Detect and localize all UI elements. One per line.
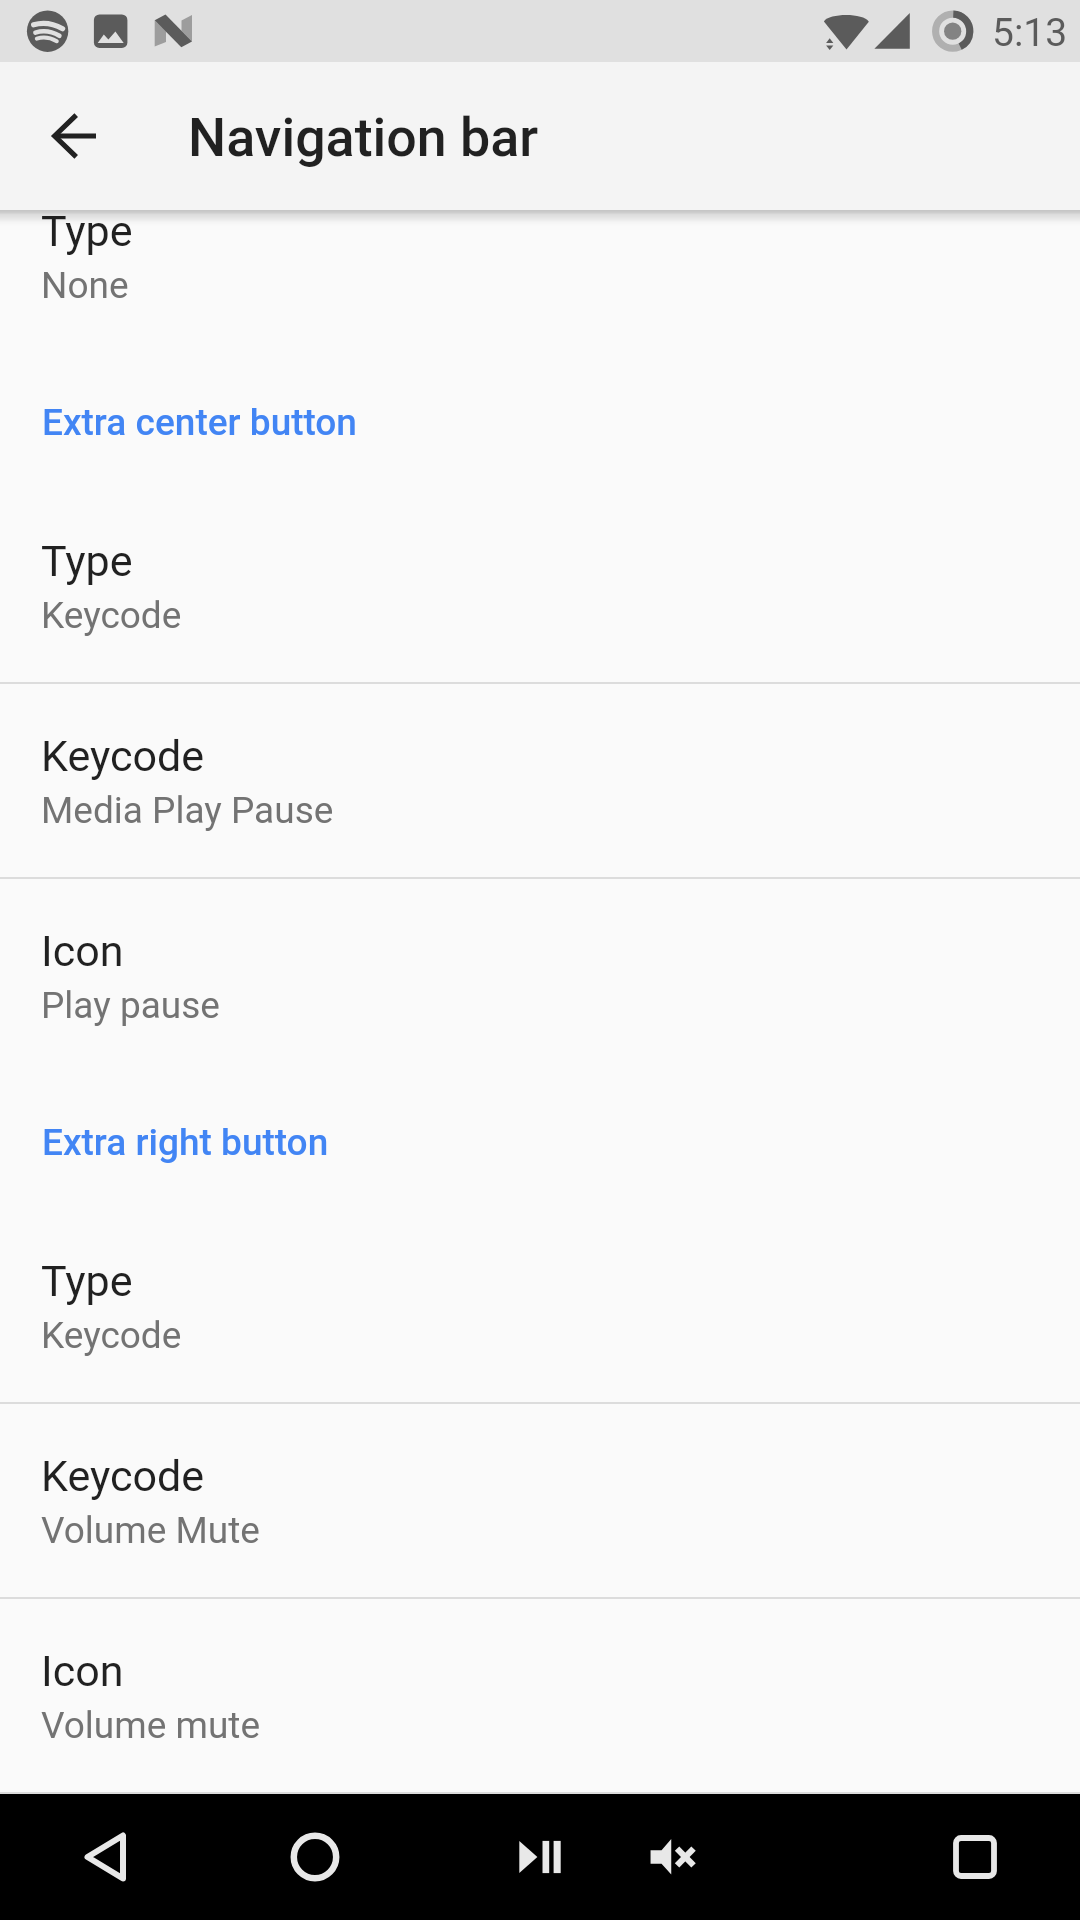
staticText: Type [41,536,133,586]
button[interactable]: Navigate up [0,62,148,210]
button[interactable]: Extra right button [0,1072,1080,1209]
staticText: 5:13 [992,10,1068,56]
button[interactable]: Recent apps [912,1794,1038,1920]
button[interactable]: Volume mute [609,1794,735,1920]
button[interactable]: Icon [0,1599,1080,1743]
button[interactable]: Keycode [0,1404,1080,1597]
button[interactable]: Type [0,1209,1080,1402]
staticText: Type [41,210,133,256]
staticText: Keycode [41,594,182,637]
button[interactable]: Type [0,210,1080,352]
staticText: Keycode [41,1314,182,1357]
staticText: Volume Mute [41,1509,260,1552]
staticText: Type [41,1256,133,1306]
button[interactable]: Type [0,489,1080,682]
staticText: Volume mute [41,1704,261,1743]
staticText: Extra right button [42,1121,329,1164]
staticText: Icon [41,926,124,976]
button[interactable]: Back [42,1794,168,1920]
staticText: Keycode [41,731,205,781]
staticText: Play pause [41,984,220,1027]
staticText: Keycode [41,1451,205,1501]
button[interactable]: Home [252,1794,378,1920]
button[interactable]: Keycode [0,684,1080,877]
staticText: Media Play Pause [41,789,334,832]
button[interactable]: Play pause [477,1794,603,1920]
button[interactable]: Icon [0,879,1080,1072]
staticText: Extra center button [42,401,357,444]
staticText: None [41,264,129,307]
staticText: Icon [41,1646,124,1696]
staticText: Navigation bar [188,106,539,169]
button[interactable]: Extra center button [0,352,1080,489]
